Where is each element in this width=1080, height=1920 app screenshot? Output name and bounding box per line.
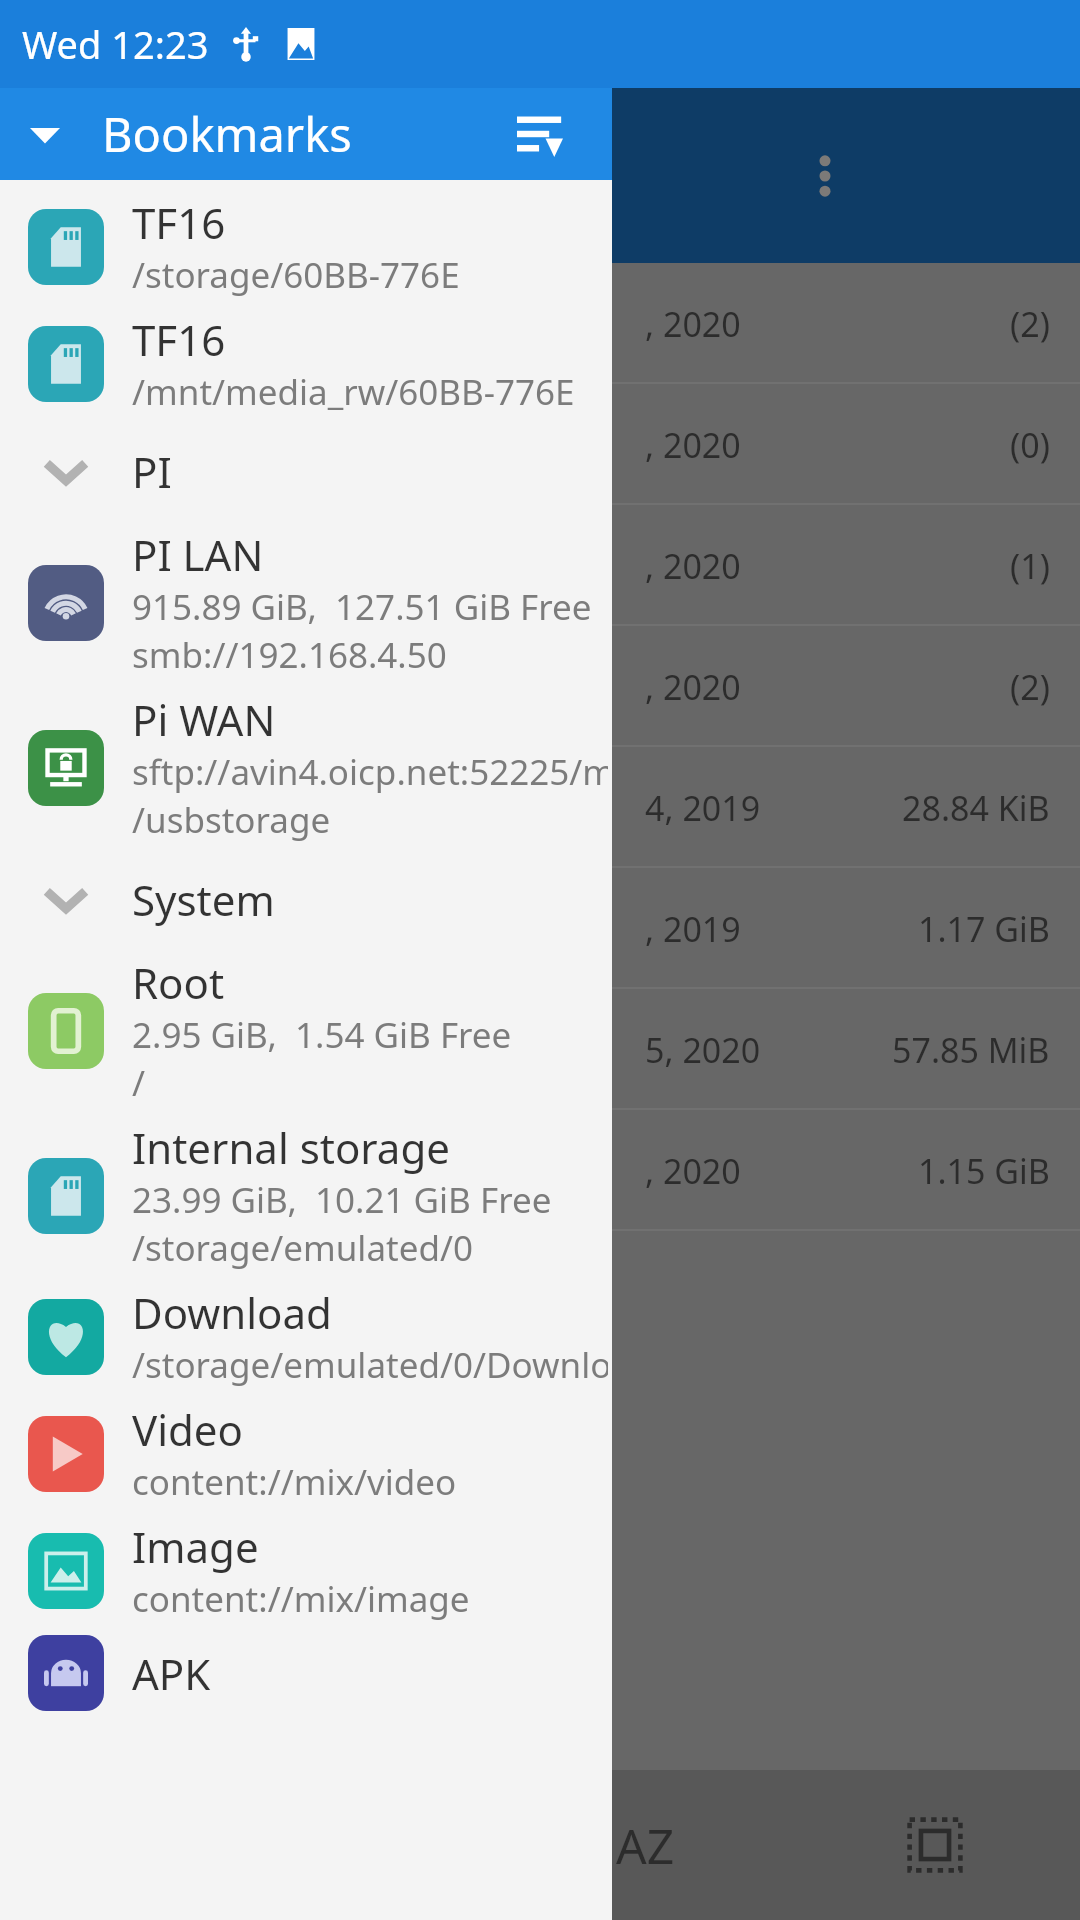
button[interactable]: More options — [770, 121, 880, 231]
button[interactable]: Collapse bookmarks — [10, 99, 80, 169]
staticText: /usbstorage — [132, 796, 331, 844]
staticText: Video — [132, 1401, 243, 1458]
button[interactable]: 5, 2020 — [0, 989, 1080, 1110]
button[interactable]: TF16 — [0, 188, 612, 305]
staticText: 4, 2019 — [645, 785, 761, 831]
staticText: Image — [132, 1518, 259, 1575]
button[interactable]: PI LAN — [0, 520, 612, 685]
staticText: / — [132, 1059, 146, 1107]
staticText: , 2019 — [645, 906, 741, 952]
button[interactable]: Pi WAN — [0, 685, 612, 850]
staticText: /mnt/media_rw/60BB-776E — [132, 368, 575, 416]
button[interactable]: 4, 2019 — [0, 747, 1080, 868]
staticText: (0) — [1010, 422, 1050, 468]
button[interactable]: , 2020 — [0, 263, 1080, 384]
button[interactable]: TF16 — [0, 305, 612, 422]
staticText: TF16 — [132, 194, 226, 251]
staticText: Internal storage — [132, 1119, 450, 1176]
staticText: 915.89 GiB, 127.51 GiB Free — [132, 583, 592, 631]
staticText: 28.84 KiB — [902, 785, 1050, 831]
staticText: content://mix/video — [132, 1458, 457, 1506]
staticText: Root — [132, 954, 225, 1011]
button[interactable]: Sort — [498, 92, 582, 176]
staticText: PI LAN — [132, 526, 264, 583]
staticText: 23.99 GiB, 10.21 GiB Free — [132, 1176, 552, 1224]
staticText: Bookmarks — [102, 102, 352, 166]
staticText: /storage/60BB-776E — [132, 251, 460, 299]
button[interactable]: System — [0, 850, 612, 948]
staticText: , 2020 — [645, 422, 741, 468]
staticText: /storage/emulated/0 — [132, 1224, 473, 1272]
staticText: AZ — [616, 1813, 675, 1878]
staticText: /storage/emulated/0/Download — [132, 1341, 608, 1389]
button[interactable]: Image — [0, 1512, 612, 1629]
button[interactable]: Internal storage — [0, 1113, 612, 1278]
staticText: (2) — [1010, 301, 1050, 347]
button[interactable]: , 2020 — [0, 626, 1080, 747]
staticText: 2.95 GiB, 1.54 GiB Free — [132, 1011, 512, 1059]
button[interactable]: Root — [0, 948, 612, 1113]
staticText: Wed 12:23 — [22, 18, 209, 70]
staticText: TF16 — [132, 311, 226, 368]
staticText: smb://192.168.4.50 — [132, 631, 447, 679]
staticText: Download — [132, 1284, 332, 1341]
staticText: (1) — [1010, 543, 1050, 589]
button[interactable]: AZ — [500, 1770, 790, 1920]
button[interactable]: Video — [0, 1395, 612, 1512]
staticText: , 2020 — [645, 301, 741, 347]
button[interactable]: Select all — [790, 1770, 1080, 1920]
button[interactable]: , 2020 — [0, 384, 1080, 505]
staticText: Pi WAN — [132, 691, 276, 748]
staticText: PI — [132, 443, 172, 500]
button[interactable]: , 2020 — [0, 505, 1080, 626]
staticText: , 2020 — [645, 1148, 741, 1194]
button[interactable]: , 2019 — [0, 868, 1080, 989]
button[interactable]: , 2020 — [0, 1110, 1080, 1231]
staticText: sftp://avin4.oicp.net:52225/mnt — [132, 748, 608, 796]
staticText: System — [132, 871, 275, 928]
staticText: , 2020 — [645, 664, 741, 710]
staticText: 57.85 MiB — [892, 1027, 1050, 1073]
staticText: content://mix/image — [132, 1575, 470, 1623]
button[interactable]: PI — [0, 422, 612, 520]
button[interactable]: APK — [0, 1629, 612, 1717]
staticText: 5, 2020 — [645, 1027, 761, 1073]
staticText: APK — [132, 1645, 211, 1702]
button[interactable]: Download — [0, 1278, 612, 1395]
staticText: , 2020 — [645, 543, 741, 589]
staticText: 1.17 GiB — [918, 906, 1050, 952]
staticText: 1.15 GiB — [918, 1148, 1050, 1194]
staticText: (2) — [1010, 664, 1050, 710]
